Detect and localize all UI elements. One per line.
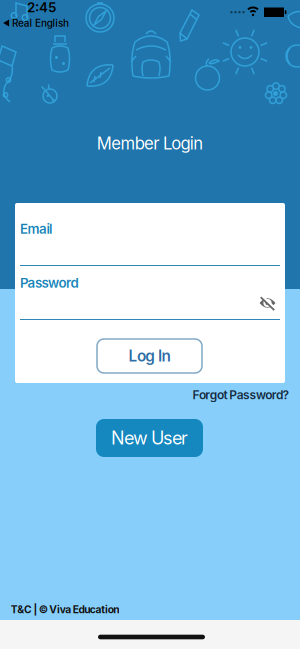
- button[interactable]: Show password: [258, 296, 276, 311]
- button[interactable]: Log In: [97, 339, 202, 373]
- button[interactable]: Password: [20, 257, 280, 321]
- staticText: Email: [20, 221, 52, 237]
- button[interactable]: Forgot Password?: [192, 388, 289, 402]
- staticText: Log In: [128, 347, 170, 365]
- staticText: New User: [111, 427, 188, 449]
- staticText: T&C | © Viva Education: [11, 603, 119, 616]
- staticText: Forgot Password?: [192, 388, 289, 402]
- button[interactable]: Email: [20, 203, 280, 267]
- staticText: Member Login: [97, 133, 203, 154]
- staticText: Password: [20, 275, 78, 291]
- button[interactable]: Back to Real English: [3, 17, 69, 29]
- button[interactable]: New User: [96, 419, 203, 457]
- staticText: 2:45: [27, 0, 56, 16]
- button[interactable]: T&C | © Viva Education: [11, 603, 119, 616]
- staticText: Real English: [12, 17, 69, 29]
